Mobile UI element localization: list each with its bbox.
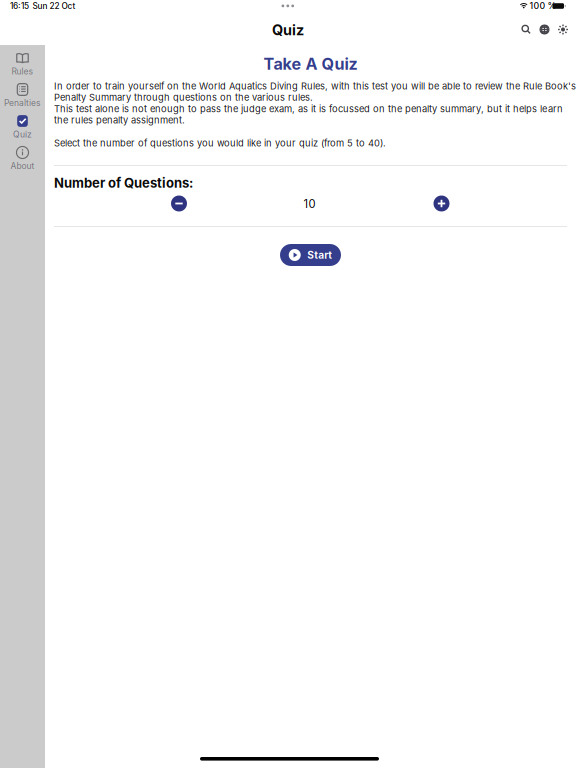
- staticText: 16:15: [10, 1, 29, 11]
- button[interactable]: Quiz: [0, 114, 45, 139]
- staticText: Rules: [11, 66, 33, 77]
- staticText: 10: [303, 197, 315, 211]
- staticText: 100 %: [529, 0, 556, 11]
- button[interactable]: Search: [515, 18, 537, 40]
- button[interactable]: Start: [280, 244, 341, 266]
- staticText: Start: [307, 249, 332, 261]
- staticText: About: [10, 161, 34, 171]
- button[interactable]: About: [0, 145, 45, 170]
- staticText: the rules penalty assignment.: [54, 115, 185, 126]
- staticText: Quiz: [272, 21, 304, 39]
- staticText: This test alone is not enough to pass th…: [54, 103, 563, 114]
- staticText: Number of Questions:: [54, 175, 193, 191]
- staticText: Take A Quiz: [263, 54, 357, 74]
- staticText: Penalties: [4, 98, 41, 108]
- button[interactable]: Increase: [428, 192, 454, 214]
- staticText: Penalty Summary through questions on the…: [54, 92, 313, 103]
- staticText: Sun 22 Oct: [32, 1, 75, 11]
- staticText: Select the number of questions you would…: [54, 137, 386, 149]
- button[interactable]: Rules: [0, 51, 45, 76]
- button[interactable]: Penalties: [0, 82, 45, 107]
- button[interactable]: Appearance: [552, 18, 574, 40]
- button[interactable]: Decrease: [166, 192, 192, 214]
- staticText: In order to train yourself on the World …: [54, 80, 576, 92]
- staticText: Quiz: [13, 129, 32, 140]
- button[interactable]: Language: [533, 18, 555, 40]
